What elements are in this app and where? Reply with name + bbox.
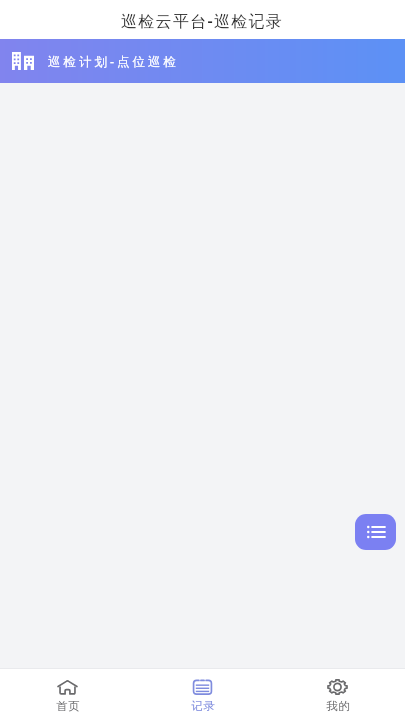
staticText: 巡检计划-点位巡检 [48,53,180,70]
staticText: 首页 [56,699,80,713]
button[interactable]: 首页 [0,677,135,713]
staticText: 巡检云平台-巡检记录 [121,10,284,32]
staticText: 我的 [326,699,350,713]
button[interactable]: 巡检计划-点位巡检 [0,39,405,83]
button[interactable]: 记录列表 [355,514,396,550]
staticText: 记录 [191,699,215,713]
button[interactable]: 记录 [135,677,270,713]
button[interactable]: 我的 [270,677,405,713]
